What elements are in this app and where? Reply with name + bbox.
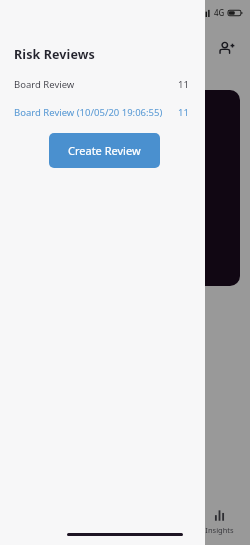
button[interactable]: Board Review bbox=[0, 76, 205, 93]
staticText: Risk Reviews bbox=[14, 46, 95, 63]
button[interactable]: Create Review bbox=[49, 133, 160, 168]
staticText: 11 bbox=[178, 106, 189, 119]
staticText: Insights bbox=[205, 525, 234, 535]
button[interactable]: Insights bbox=[192, 508, 246, 535]
staticText: Understand the terms risk and risk manag… bbox=[28, 162, 122, 219]
staticText: Managing bbox=[28, 106, 114, 129]
staticText: Risk i... bbox=[28, 129, 88, 152]
button[interactable]: Add person bbox=[210, 32, 242, 64]
staticText: 11 bbox=[178, 78, 189, 91]
staticText: 4G bbox=[214, 7, 225, 18]
button[interactable]: Managing bbox=[12, 90, 240, 286]
staticText: Board Review bbox=[14, 78, 75, 91]
button[interactable]: Board Review (10/05/20 19:06:55) bbox=[0, 104, 205, 121]
staticText: Create Review bbox=[68, 143, 141, 158]
staticText: Board Review (10/05/20 19:06:55) bbox=[14, 106, 163, 119]
